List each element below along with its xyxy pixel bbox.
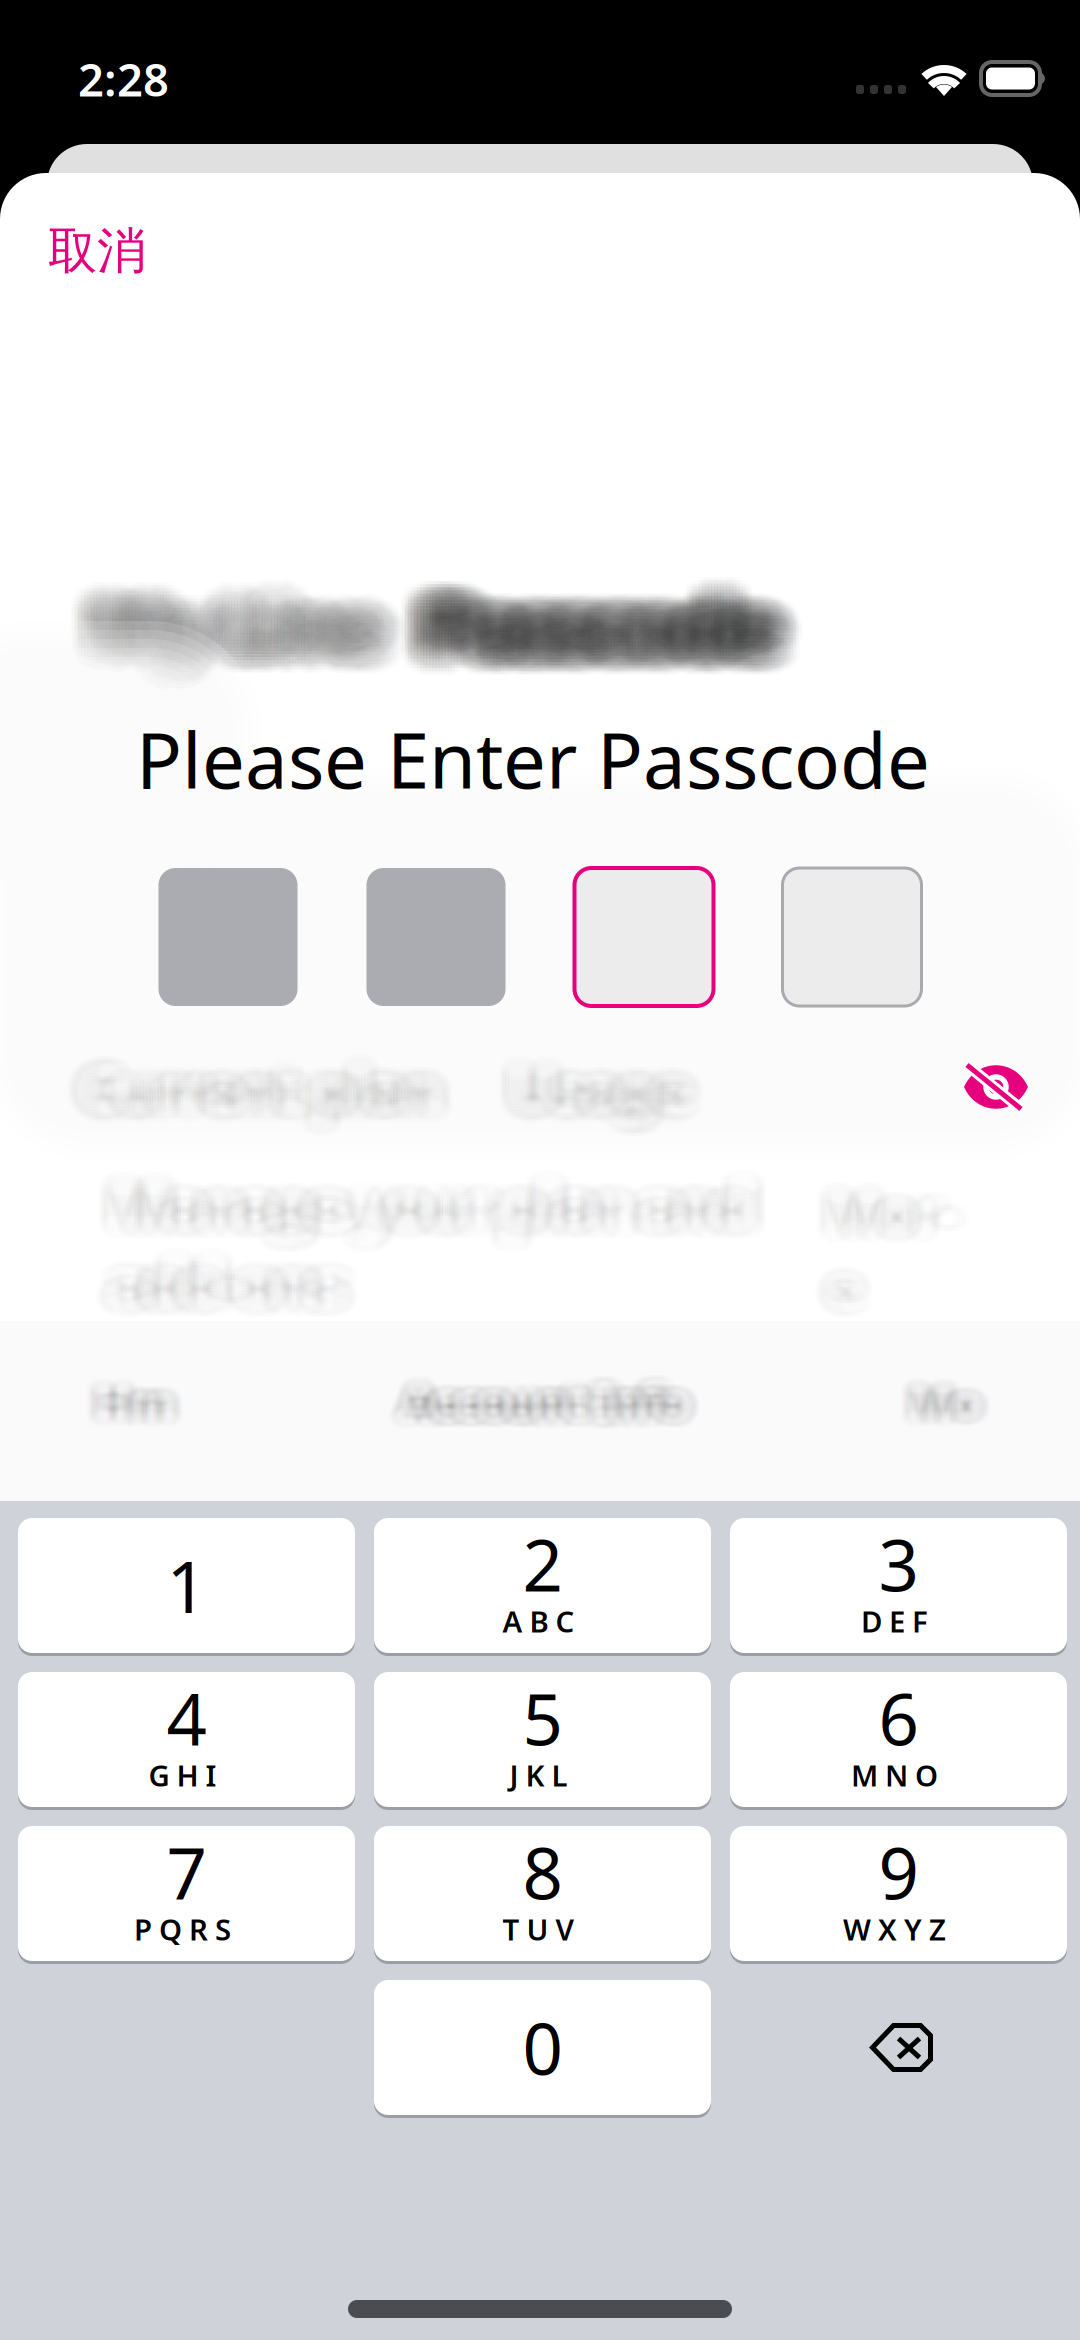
staticText: Account Info <box>413 1369 696 1429</box>
staticText: More <box>842 1179 971 1327</box>
staticText: Manage your plan and add-ons <box>104 1168 743 1324</box>
staticText: Manage your plan and add-ons <box>140 1162 779 1318</box>
staticText: Manage your plan and add-ons <box>140 1185 779 1341</box>
staticText: Current plan <box>73 1049 431 1127</box>
staticText: Mo <box>894 1367 964 1427</box>
staticText: Account Info <box>383 1377 666 1437</box>
staticText: Current plan <box>81 1049 439 1127</box>
staticText: More <box>809 1163 938 1312</box>
button[interactable]: 6 <box>730 1672 1067 1807</box>
staticText: More <box>813 1189 942 1338</box>
staticText: Manage your plan and add-ons <box>104 1165 743 1321</box>
staticText: Passcode <box>419 577 768 679</box>
staticText: Mo <box>921 1365 991 1425</box>
staticText: Account Info <box>393 1375 676 1435</box>
staticText: Current plan <box>56 1055 414 1133</box>
staticText: Mo <box>923 1367 993 1427</box>
staticText: Manage your plan and add-ons <box>129 1168 768 1324</box>
staticText: Current plan <box>81 1046 439 1124</box>
button[interactable]: 9 <box>730 1826 1067 1961</box>
button[interactable]: 0 <box>374 1980 711 2115</box>
button[interactable]: 2 <box>374 1518 711 1653</box>
staticText: Mo <box>923 1383 993 1443</box>
staticText: Mo <box>921 1367 991 1427</box>
staticText: Passcode <box>447 589 796 692</box>
button[interactable]: 3 <box>730 1518 1067 1653</box>
staticText: 3 <box>878 1517 918 1611</box>
button[interactable]: Delete <box>730 1980 1067 2115</box>
staticText: Manage your plan and add-ons <box>85 1162 724 1318</box>
staticText: Hm <box>94 1373 172 1433</box>
staticText: Mo <box>912 1379 982 1439</box>
staticText: Current plan <box>95 1038 453 1115</box>
staticText: Usage <box>541 1060 719 1138</box>
staticText: Current plan <box>95 1060 453 1138</box>
staticText: More <box>813 1171 942 1320</box>
staticText: Usage <box>511 1069 689 1147</box>
button[interactable]: 7 <box>18 1826 355 1961</box>
button[interactable]: 8 <box>374 1826 711 1961</box>
staticText: Mo <box>917 1371 987 1431</box>
staticText: My Line <box>129 563 412 662</box>
staticText: Mo <box>895 1361 965 1421</box>
staticText: Manage your plan and add-ons <box>142 1174 781 1329</box>
staticText: More <box>844 1161 973 1309</box>
staticText: Hm <box>96 1361 174 1421</box>
staticText: Mo <box>892 1361 962 1421</box>
button[interactable]: 取消 <box>48 206 198 296</box>
staticText: Hm <box>105 1385 183 1445</box>
staticText: Passcode <box>416 552 765 654</box>
staticText: Manage your plan and add-ons <box>123 1171 762 1327</box>
staticText: Account Info <box>387 1381 670 1441</box>
staticText: Account Info <box>383 1369 666 1429</box>
staticText: More <box>806 1176 935 1325</box>
staticText: Passcode <box>459 596 808 698</box>
staticText: Mo <box>928 1365 998 1425</box>
staticText: Current plan <box>89 1035 447 1113</box>
staticText: Current plan <box>92 1052 450 1130</box>
staticText: My Line <box>99 572 382 671</box>
staticText: Usage <box>484 1055 662 1133</box>
staticText: Account Info <box>383 1367 666 1427</box>
staticText: Mo <box>897 1383 967 1443</box>
staticText: Hm <box>109 1361 187 1421</box>
staticText: Account Info <box>385 1363 668 1423</box>
staticText: Manage your plan and add-ons <box>91 1156 730 1312</box>
staticText: My Line <box>89 569 372 668</box>
staticText: Account Info <box>416 1381 699 1441</box>
staticText: Account Info <box>403 1363 686 1423</box>
staticText: Manage your plan and add-ons <box>140 1156 779 1312</box>
staticText: More <box>818 1163 947 1312</box>
staticText: Usage <box>505 1040 683 1118</box>
button[interactable]: Show passcode <box>939 1040 1053 1134</box>
staticText: Current plan <box>92 1049 450 1127</box>
staticText: My Line <box>83 560 366 659</box>
staticText: More <box>830 1186 959 1335</box>
staticText: Hm <box>76 1379 154 1439</box>
staticText: More <box>820 1158 949 1307</box>
staticText: Manage your plan and add-ons <box>140 1174 779 1329</box>
staticText: Passcode <box>425 552 774 654</box>
button[interactable]: 5 <box>374 1672 711 1807</box>
staticText: Hm <box>100 1363 178 1423</box>
button[interactable]: 4 <box>18 1672 355 1807</box>
staticText: My Line <box>83 585 366 684</box>
staticText: More <box>830 1158 959 1307</box>
staticText: Hm <box>89 1363 167 1423</box>
staticText: My Line <box>102 591 385 690</box>
staticText: Account Info <box>396 1379 679 1439</box>
staticText: Passcode <box>435 570 784 673</box>
staticText: Hm <box>110 1371 188 1431</box>
staticText: My Line <box>129 588 412 687</box>
button[interactable]: 1 <box>18 1518 355 1653</box>
staticText: Account Info <box>411 1369 694 1429</box>
staticText: Hm <box>89 1385 167 1445</box>
staticText: Usage <box>511 1052 689 1130</box>
staticText: Hm <box>89 1383 167 1443</box>
staticText: My Line <box>126 585 409 684</box>
staticText: Account Info <box>423 1363 706 1423</box>
staticText: Hm <box>90 1361 168 1421</box>
staticText: Manage your plan and add-ons <box>137 1162 776 1318</box>
staticText: My Line <box>102 553 385 653</box>
staticText: Mo <box>924 1377 994 1437</box>
